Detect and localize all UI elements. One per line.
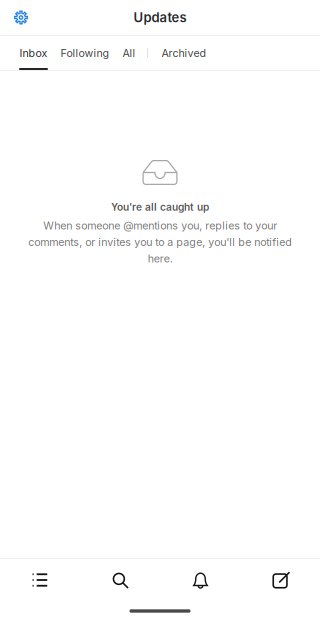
staticText: All — [122, 46, 135, 59]
staticText: You're all caught up — [111, 201, 209, 213]
staticText: Inbox — [19, 46, 47, 59]
button[interactable]: Compose — [240, 560, 320, 598]
staticText: When someone @mentions you, replies to y… — [28, 219, 292, 265]
button[interactable]: Settings — [0, 0, 35, 35]
staticText: Updates — [133, 10, 186, 25]
button[interactable]: Inbox — [13, 36, 54, 70]
button[interactable]: Archived — [155, 36, 213, 70]
staticText: Archived — [161, 46, 206, 59]
button[interactable]: Feed — [0, 560, 80, 598]
button[interactable]: Following — [54, 36, 116, 70]
staticText: Following — [60, 46, 109, 59]
button[interactable]: Notifications — [160, 560, 240, 598]
button[interactable]: Search — [80, 560, 160, 598]
button[interactable]: All — [116, 36, 142, 70]
